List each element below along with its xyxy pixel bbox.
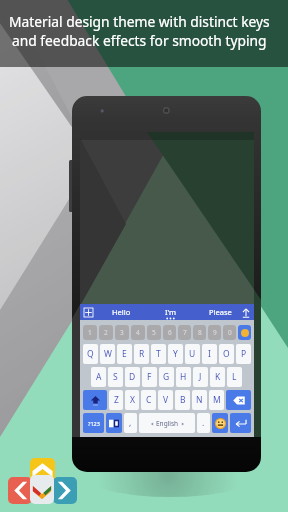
staticText: Hello [112, 307, 131, 317]
button[interactable]: S [108, 367, 123, 387]
staticText: 4 [136, 328, 140, 337]
button[interactable]: M [209, 390, 224, 410]
staticText: 1 [88, 328, 92, 337]
button[interactable]: 2 [99, 325, 113, 340]
button[interactable]: Q [83, 344, 98, 364]
button[interactable]: App logo [5, 458, 81, 506]
button[interactable]: 3 [115, 325, 129, 340]
staticText: 5 [152, 328, 156, 337]
button[interactable]: R [134, 344, 149, 364]
staticText: P [241, 348, 247, 360]
staticText: 3 [120, 328, 124, 337]
staticText: L [232, 371, 237, 383]
button[interactable]: Shift [83, 390, 107, 410]
staticText: D [129, 371, 136, 383]
staticText: 2 [104, 328, 108, 337]
staticText: F [147, 371, 152, 383]
button[interactable]: Expand suggestions [237, 304, 254, 320]
staticText: N [196, 394, 203, 406]
staticText: Material design theme with distinct keys [9, 12, 270, 31]
staticText: A [96, 371, 102, 383]
staticText: J [199, 371, 202, 383]
button[interactable]: Y [168, 344, 183, 364]
button[interactable]: Keyboard menu [81, 304, 95, 320]
button[interactable]: L [227, 367, 242, 387]
staticText: 0 [228, 328, 232, 337]
button[interactable]: Backspace [226, 390, 251, 410]
staticText: H [180, 371, 187, 383]
button[interactable]: 4 [131, 325, 145, 340]
button[interactable]: B [175, 390, 190, 410]
button[interactable]: U [185, 344, 200, 364]
button[interactable]: Emoji [212, 413, 228, 433]
button[interactable]: . [197, 413, 210, 433]
button[interactable]: E [117, 344, 132, 364]
staticText: I [208, 348, 211, 360]
button[interactable]: Enter [230, 413, 251, 433]
staticText: and feedback effects for smooth typing [12, 31, 267, 50]
button[interactable]: V [158, 390, 173, 410]
button[interactable]: English [139, 413, 195, 433]
staticText: X [130, 394, 135, 406]
staticText: V [163, 394, 169, 406]
staticText: English [156, 419, 179, 428]
button[interactable]: G [159, 367, 174, 387]
staticText: G [163, 371, 170, 383]
staticText: S [113, 371, 118, 383]
staticText: B [180, 394, 186, 406]
staticText: 8 [198, 328, 202, 337]
staticText: . [202, 417, 205, 429]
button[interactable]: Z [109, 390, 123, 410]
staticText: ?123 [88, 420, 100, 427]
button[interactable]: T [151, 344, 166, 364]
button[interactable]: 0 [223, 325, 236, 340]
button[interactable]: 7 [178, 325, 191, 340]
staticText: Y [173, 348, 178, 360]
button[interactable]: Switch keyboard [106, 413, 122, 433]
button[interactable]: 1 [83, 325, 97, 340]
staticText: Please [209, 307, 232, 317]
staticText: T [156, 348, 161, 360]
button[interactable]: P [236, 344, 251, 364]
button[interactable]: ?123 [83, 413, 104, 433]
button[interactable]: F [142, 367, 157, 387]
staticText: 9 [213, 328, 217, 337]
button[interactable]: 9 [208, 325, 221, 340]
button[interactable]: 6 [163, 325, 176, 340]
button[interactable]: I [202, 344, 217, 364]
button[interactable]: A [91, 367, 106, 387]
staticText: O [223, 348, 230, 360]
button[interactable]: O [219, 344, 234, 364]
staticText: U [189, 348, 196, 360]
button[interactable]: H [176, 367, 191, 387]
staticText: Q [87, 348, 94, 360]
button[interactable]: J [193, 367, 208, 387]
button[interactable]: D [125, 367, 140, 387]
staticText: W [104, 348, 112, 360]
button[interactable]: K [210, 367, 225, 387]
button[interactable]: 8 [193, 325, 206, 340]
button[interactable]: C [141, 390, 156, 410]
staticText: 7 [183, 328, 187, 337]
staticText: M [213, 394, 221, 406]
button[interactable]: W [100, 344, 115, 364]
button[interactable]: I'm [148, 304, 193, 320]
button[interactable]: 5 [147, 325, 161, 340]
staticText: Z [114, 394, 119, 406]
staticText: K [215, 371, 221, 383]
staticText: C [146, 394, 152, 406]
button[interactable]: X [125, 390, 139, 410]
button[interactable]: , [124, 413, 137, 433]
button[interactable]: Hello [97, 304, 145, 320]
staticText: , [129, 417, 132, 429]
button[interactable]: N [192, 390, 207, 410]
staticText: R [139, 348, 145, 360]
staticText: I'm [165, 307, 177, 317]
staticText: 6 [168, 328, 172, 337]
staticText: E [122, 348, 127, 360]
button[interactable]: Emoji keyboard [238, 325, 251, 340]
button[interactable]: Please [196, 304, 245, 320]
